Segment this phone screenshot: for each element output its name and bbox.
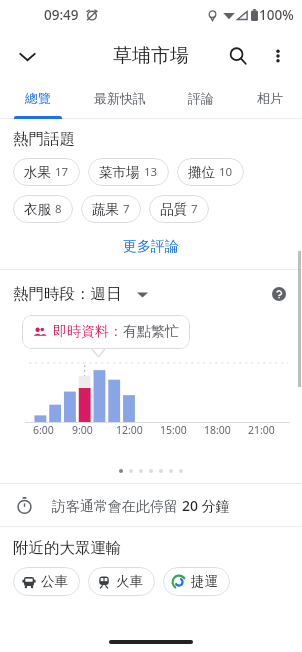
staticText: 菜市場 xyxy=(99,164,140,181)
button[interactable]: 公車 xyxy=(13,567,80,596)
staticText: 更多評論 xyxy=(123,238,179,256)
staticText: 即時資料 xyxy=(53,323,109,341)
staticText: 8 xyxy=(55,201,62,217)
staticText: 10 xyxy=(219,164,233,180)
button[interactable]: 菜市場 xyxy=(88,158,169,186)
staticText: 7 xyxy=(123,201,130,217)
staticText: 17 xyxy=(55,164,69,180)
button[interactable]: Search xyxy=(218,36,258,76)
button[interactable]: 水果 xyxy=(13,158,80,186)
button[interactable]: 最新快訊 xyxy=(76,82,164,119)
staticText: 7 xyxy=(191,201,198,217)
staticText: 捷運 xyxy=(191,573,218,590)
button[interactable]: 品質 xyxy=(149,195,209,223)
button[interactable]: 捷運 xyxy=(163,567,230,596)
button[interactable]: 總覽 xyxy=(0,82,76,119)
staticText: 100% xyxy=(259,6,294,24)
staticText: 蔬果 xyxy=(92,201,119,218)
staticText: 最新快訊 xyxy=(94,90,146,106)
staticText: 水果 xyxy=(24,164,51,181)
button[interactable]: 更多評論 xyxy=(13,234,289,260)
staticText: 13 xyxy=(144,164,158,180)
button[interactable]: Collapse xyxy=(6,35,48,77)
staticText: 草埔市場 xyxy=(113,44,189,68)
staticText: 訪客通常會在此停留 xyxy=(52,496,182,515)
staticText: 18:00 xyxy=(204,423,231,437)
staticText: 火車 xyxy=(116,573,143,590)
staticText: 15:00 xyxy=(160,423,187,437)
staticText: 附近的大眾運輸 xyxy=(13,538,122,558)
staticText: 總覽 xyxy=(25,90,51,106)
staticText: 12:00 xyxy=(116,423,143,437)
button[interactable]: Help xyxy=(266,281,292,307)
staticText: 相片 xyxy=(257,90,283,106)
staticText: 攤位 xyxy=(188,164,215,181)
button[interactable]: 攤位 xyxy=(177,158,244,186)
button[interactable]: 評論 xyxy=(164,82,237,119)
button[interactable]: 火車 xyxy=(88,567,155,596)
staticText: 20 分鐘 xyxy=(182,496,230,515)
staticText: 有點繁忙 xyxy=(123,323,179,341)
staticText: 公車 xyxy=(41,573,68,590)
staticText: 衣服 xyxy=(24,201,51,218)
staticText: 熱門時段：週日 xyxy=(13,284,122,304)
staticText: ： xyxy=(109,323,123,341)
button[interactable]: More options xyxy=(258,36,298,76)
button[interactable]: 蔬果 xyxy=(81,195,141,223)
staticText: 品質 xyxy=(160,201,187,218)
button[interactable]: 訪客通常會在此停留 xyxy=(0,484,302,526)
staticText: 09:49 xyxy=(44,6,79,24)
button[interactable]: 相片 xyxy=(237,82,302,119)
button[interactable]: 衣服 xyxy=(13,195,73,223)
staticText: 9:00 xyxy=(72,423,93,437)
staticText: 熱門話題 xyxy=(13,129,75,149)
button[interactable]: Choose day xyxy=(132,284,152,304)
staticText: 21:00 xyxy=(248,423,275,437)
staticText: 6:00 xyxy=(33,423,54,437)
staticText: 評論 xyxy=(188,90,214,106)
